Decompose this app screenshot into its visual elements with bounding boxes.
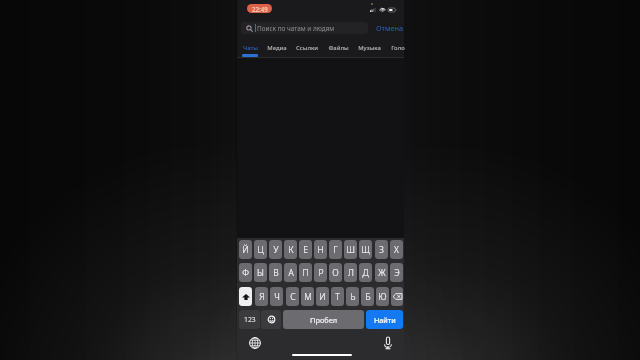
staticText: Отмена: [376, 23, 404, 33]
button[interactable]: И: [316, 287, 329, 306]
button[interactable]: О: [329, 263, 342, 282]
staticText: Е: [303, 244, 308, 256]
button[interactable]: А: [284, 263, 297, 282]
staticText: Медиа: [267, 44, 287, 52]
staticText: Ц: [257, 244, 264, 256]
staticText: Л: [348, 267, 354, 279]
staticText: О: [332, 267, 339, 279]
button[interactable]: Г: [329, 240, 342, 259]
staticText: Н: [317, 244, 324, 256]
staticText: Музыка: [358, 44, 381, 52]
button[interactable]: Э: [390, 263, 403, 282]
staticText: 123: [244, 315, 256, 324]
button[interactable]: Ч: [270, 287, 283, 306]
button[interactable]: Emoji: [261, 310, 281, 329]
button[interactable]: Пробел: [283, 310, 364, 329]
button[interactable]: Ю: [376, 287, 389, 306]
button[interactable]: Поиск по чатам и людям: [241, 22, 368, 34]
staticText: Р: [318, 267, 324, 279]
staticText: Поиск по чатам и людям: [257, 24, 335, 33]
button[interactable]: М: [301, 287, 314, 306]
button[interactable]: Й: [239, 240, 252, 259]
staticText: К: [288, 244, 294, 256]
staticText: Я: [259, 291, 265, 303]
button[interactable]: Shift: [239, 287, 252, 306]
button[interactable]: Ж: [375, 263, 388, 282]
button[interactable]: Backspace: [391, 287, 403, 306]
button[interactable]: Найти: [366, 310, 403, 329]
button[interactable]: Голо: [385, 38, 411, 57]
staticText: Б: [365, 291, 371, 303]
button[interactable]: Ссылки: [294, 38, 320, 57]
button[interactable]: П: [299, 263, 312, 282]
staticText: Д: [362, 267, 369, 279]
staticText: Х: [394, 244, 399, 256]
staticText: Г: [333, 244, 338, 256]
staticText: З: [379, 244, 384, 256]
staticText: Голо: [391, 44, 405, 52]
staticText: Щ: [361, 244, 370, 256]
staticText: С: [290, 291, 296, 303]
staticText: Й: [242, 244, 249, 256]
staticText: У: [273, 244, 279, 256]
staticText: 22:49: [252, 5, 268, 13]
staticText: Ю: [378, 291, 387, 303]
staticText: Файлы: [328, 44, 349, 52]
staticText: Чаты: [243, 44, 258, 52]
staticText: Ж: [378, 267, 386, 279]
staticText: Ь: [350, 291, 356, 303]
button[interactable]: У: [269, 240, 282, 259]
button[interactable]: Т: [331, 287, 344, 306]
button[interactable]: Х: [390, 240, 403, 259]
staticText: Найти: [374, 315, 396, 325]
button[interactable]: Р: [314, 263, 327, 282]
staticText: А: [288, 267, 294, 279]
button[interactable]: Музыка: [356, 38, 382, 57]
staticText: И: [319, 291, 326, 303]
button[interactable]: Change keyboard: [248, 336, 262, 350]
staticText: Т: [335, 291, 340, 303]
button[interactable]: К: [284, 240, 297, 259]
button[interactable]: Ф: [239, 263, 252, 282]
staticText: Э: [394, 267, 400, 279]
staticText: П: [302, 267, 309, 279]
button[interactable]: С: [286, 287, 299, 306]
button[interactable]: Б: [361, 287, 374, 306]
button[interactable]: 123: [239, 310, 260, 329]
button[interactable]: Н: [314, 240, 327, 259]
button[interactable]: Чаты: [237, 38, 263, 57]
staticText: Ы: [257, 267, 264, 279]
staticText: М: [304, 291, 312, 303]
staticText: Ссылки: [296, 44, 318, 52]
button[interactable]: Медиа: [264, 38, 290, 57]
staticText: В: [273, 267, 279, 279]
staticText: Пробел: [310, 315, 338, 325]
button[interactable]: Л: [344, 263, 357, 282]
button[interactable]: Ц: [254, 240, 267, 259]
button[interactable]: Отмена: [376, 22, 404, 34]
button[interactable]: Файлы: [325, 38, 351, 57]
button[interactable]: Ш: [344, 240, 357, 259]
staticText: Ф: [242, 267, 249, 279]
button[interactable]: Д: [359, 263, 372, 282]
button[interactable]: Ь: [346, 287, 359, 306]
button[interactable]: Е: [299, 240, 312, 259]
button[interactable]: Ы: [254, 263, 267, 282]
button[interactable]: З: [375, 240, 388, 259]
button[interactable]: Щ: [359, 240, 372, 259]
staticText: Ш: [346, 244, 355, 256]
staticText: Ч: [274, 291, 280, 303]
button[interactable]: Я: [255, 287, 268, 306]
button[interactable]: В: [269, 263, 282, 282]
button[interactable]: Voice input: [381, 336, 395, 350]
